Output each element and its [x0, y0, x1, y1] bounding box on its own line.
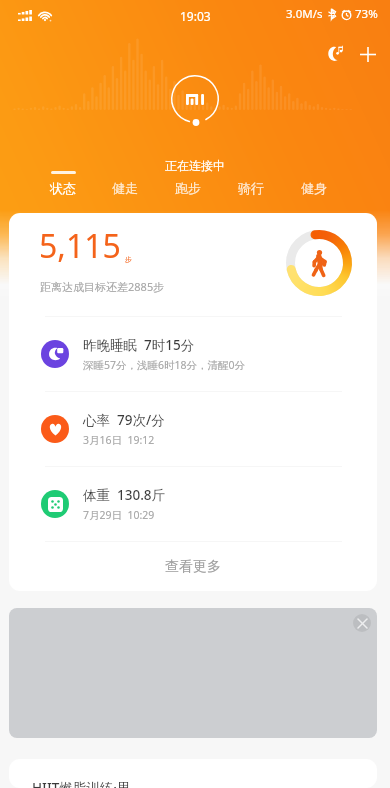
button[interactable]: 跑步 [156, 169, 219, 201]
button[interactable]: Add device [352, 38, 384, 70]
button[interactable]: 5,115 [9, 213, 377, 316]
staticText: 距离达成目标还差2885步 [40, 279, 165, 294]
staticText: 深睡57分，浅睡6时18分，清醒0分 [83, 358, 246, 372]
staticText: 体重 130.8斤 [83, 486, 166, 504]
button[interactable]: 查看更多 [9, 542, 377, 591]
button[interactable]: 状态 [32, 169, 94, 201]
button[interactable]: 心率 79次/分 [9, 392, 377, 466]
staticText: 跑步 [175, 180, 201, 196]
staticText: 7月29日 10:29 [83, 508, 155, 522]
staticText: 73% [355, 6, 378, 22]
staticText: 健走 [112, 180, 138, 196]
staticText: 3.0M/s [286, 6, 323, 22]
staticText: 心率 79次/分 [83, 411, 165, 429]
staticText: 3月16日 19:12 [83, 433, 155, 447]
button[interactable]: 体重 130.8斤 [9, 467, 377, 541]
button[interactable]: Sleep music [318, 37, 352, 71]
staticText: HIIT燃脂训练·男 [32, 779, 131, 788]
staticText: 正在连接中 [165, 158, 225, 173]
staticText: 骑行 [238, 180, 264, 196]
staticText: 查看更多 [165, 558, 221, 576]
button[interactable]: 昨晚睡眠 7时15分 [9, 317, 377, 391]
button[interactable]: HIIT燃脂训练·男 [9, 759, 377, 788]
staticText: 昨晚睡眠 7时15分 [83, 336, 195, 354]
staticText: 5,115 [39, 224, 121, 268]
button[interactable]: 健身 [282, 169, 345, 201]
staticText: 19:03 [180, 8, 211, 24]
button[interactable]: Close ad [353, 614, 371, 632]
staticText: 健身 [301, 180, 327, 196]
staticText: 步 [125, 255, 132, 264]
staticText: 状态 [50, 180, 76, 196]
button[interactable]: 健走 [94, 169, 156, 201]
button[interactable]: 骑行 [219, 169, 282, 201]
